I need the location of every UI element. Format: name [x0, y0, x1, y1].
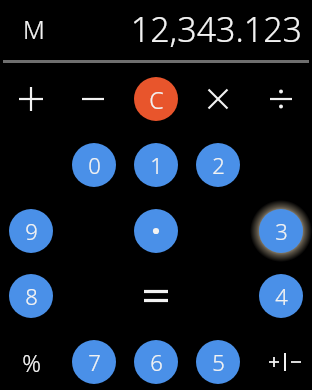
staticText: 5 [212, 347, 225, 377]
button[interactable]: Equals [130, 273, 182, 319]
button[interactable]: C [134, 77, 178, 121]
button[interactable]: 4 [259, 274, 303, 318]
staticText: % [22, 347, 41, 378]
staticText: 7 [88, 347, 101, 377]
button[interactable]: 2 [196, 143, 240, 187]
button[interactable]: 7 [72, 340, 116, 384]
button[interactable]: Multiply [195, 76, 241, 122]
staticText: 9 [25, 216, 38, 246]
staticText: 1 [150, 150, 163, 180]
staticText: C [149, 84, 164, 115]
button[interactable]: 9 [9, 209, 53, 253]
button[interactable]: Minus [70, 76, 116, 122]
button[interactable]: Memory [12, 8, 56, 50]
staticText: M [23, 12, 45, 46]
button[interactable]: 0 [72, 143, 116, 187]
button[interactable]: Plus [8, 76, 54, 122]
button[interactable]: Decimal point [134, 209, 178, 253]
staticText: 2 [212, 150, 225, 180]
button[interactable]: % [8, 339, 54, 385]
button[interactable]: Divide [258, 76, 304, 122]
button[interactable]: 1 [134, 143, 178, 187]
button[interactable]: 6 [134, 340, 178, 384]
button[interactable]: 5 [196, 340, 240, 384]
staticText: 6 [150, 347, 163, 377]
staticText: 4 [275, 281, 288, 311]
staticText: 12,343.123 [130, 6, 302, 52]
staticText: 8 [25, 281, 38, 311]
button[interactable]: 3 [259, 209, 303, 253]
button[interactable]: 8 [9, 274, 53, 318]
staticText: 0 [88, 150, 101, 180]
staticText: 3 [275, 216, 288, 246]
button[interactable]: Toggle sign [260, 340, 310, 384]
